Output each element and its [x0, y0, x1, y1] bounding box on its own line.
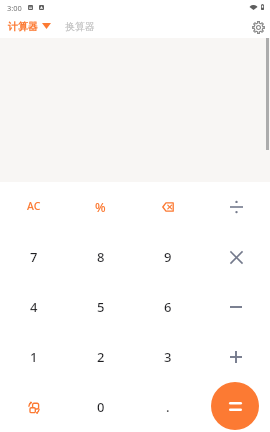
- staticText: 计算器: [8, 20, 38, 33]
- staticText: 2: [97, 348, 105, 366]
- button[interactable]: Backspace: [134, 182, 202, 232]
- button[interactable]: .: [134, 382, 202, 432]
- button[interactable]: 8: [67, 232, 134, 282]
- staticText: 8: [97, 248, 105, 266]
- button[interactable]: 9: [134, 232, 202, 282]
- staticText: 9: [164, 248, 172, 266]
- button[interactable]: 5: [67, 282, 134, 332]
- staticText: .: [166, 398, 170, 416]
- staticText: AC: [27, 199, 41, 213]
- staticText: 6: [164, 298, 172, 316]
- button[interactable]: 换算器: [62, 17, 98, 36]
- button[interactable]: 2: [67, 332, 134, 382]
- button[interactable]: Convert: [0, 382, 67, 432]
- staticText: 0: [97, 398, 105, 416]
- button[interactable]: AC: [0, 182, 67, 232]
- staticText: 3: [164, 348, 172, 366]
- button[interactable]: Percent: [67, 182, 134, 232]
- button[interactable]: 6: [134, 282, 202, 332]
- staticText: 3:00: [7, 3, 22, 13]
- button[interactable]: Divide: [202, 182, 270, 232]
- staticText: %: [95, 199, 106, 216]
- staticText: 7: [30, 248, 38, 266]
- button[interactable]: 0: [67, 382, 134, 432]
- button[interactable]: 计算器: [0, 17, 56, 36]
- button[interactable]: Multiply: [202, 232, 270, 282]
- staticText: 5: [97, 298, 105, 316]
- button[interactable]: Minus: [202, 282, 270, 332]
- staticText: 4: [30, 298, 38, 316]
- staticText: 1: [30, 348, 38, 366]
- button[interactable]: 3: [134, 332, 202, 382]
- button[interactable]: 1: [0, 332, 67, 382]
- button[interactable]: Settings: [247, 16, 269, 38]
- button[interactable]: 7: [0, 232, 67, 282]
- button[interactable]: Equals: [211, 382, 259, 430]
- button[interactable]: 4: [0, 282, 67, 332]
- button[interactable]: Plus: [202, 332, 270, 382]
